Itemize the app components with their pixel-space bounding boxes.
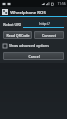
staticText: Read QRCode: [6, 33, 30, 38]
staticText: Wheelphone ROS: [10, 9, 46, 15]
button[interactable]: Show advanced options: [3, 43, 64, 48]
button[interactable]: Connect: [34, 31, 64, 39]
button[interactable]: Read QRCode: [3, 31, 32, 39]
button[interactable]: http://192.168.1.60:11311: [23, 20, 64, 28]
staticText: Connect: [42, 33, 56, 38]
staticText: Cancel: [28, 54, 40, 59]
staticText: http://192.168.1.60:11311: [25, 21, 64, 26]
button[interactable]: Cancel: [3, 52, 64, 60]
staticText: 11:56: [57, 2, 66, 6]
staticText: Show advanced options: [9, 43, 49, 48]
staticText: Robot URI: [3, 22, 21, 27]
